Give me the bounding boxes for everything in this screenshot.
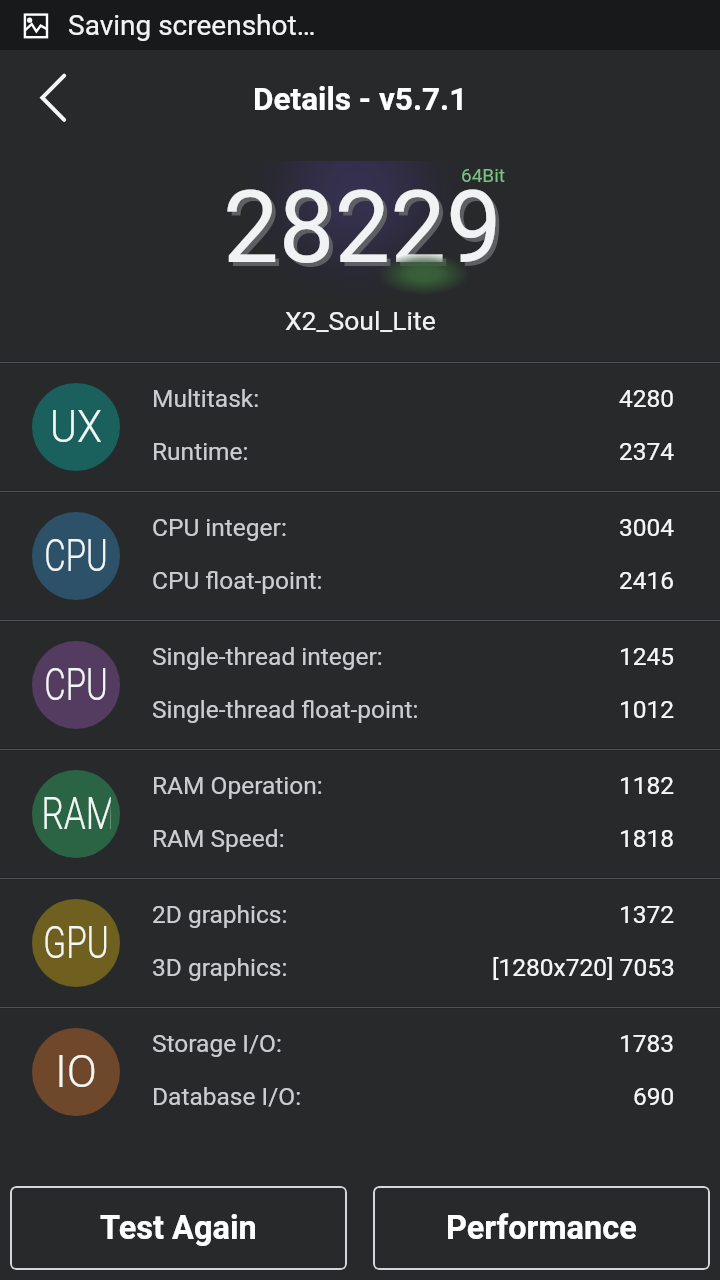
staticText: RAM (41, 788, 111, 840)
staticText: Details - v5.7.1 (253, 81, 468, 118)
staticText: Single-thread float-point: (152, 695, 419, 724)
staticText: RAM Operation: (152, 771, 323, 800)
staticText: Saving screenshot… (68, 9, 316, 42)
button[interactable]: GPU (0, 878, 720, 1007)
staticText: CPU (43, 530, 108, 582)
staticText: 64Bit (461, 164, 506, 186)
staticText: 28229 (227, 174, 506, 290)
staticText: IO (32, 1046, 120, 1098)
staticText: 1245 (619, 642, 675, 671)
staticText: 3D graphics: (152, 953, 288, 982)
staticText: 3004 (619, 513, 675, 542)
button[interactable]: RAM (0, 749, 720, 878)
staticText: 28229 (223, 170, 502, 286)
button[interactable]: IO (0, 1007, 720, 1136)
staticText: 2416 (619, 566, 675, 595)
staticText: Performance (446, 1209, 637, 1247)
staticText: 2D graphics: (152, 900, 288, 929)
staticText: CPU integer: (152, 513, 287, 542)
staticText: Multitask: (152, 384, 260, 413)
button[interactable]: Performance (373, 1186, 710, 1270)
button[interactable]: CPU (0, 491, 720, 620)
staticText: Runtime: (152, 437, 249, 466)
staticText: Single-thread integer: (152, 642, 383, 671)
button[interactable]: CPU (0, 620, 720, 749)
staticText: RAM Speed: (152, 824, 285, 853)
staticText: 1372 (619, 900, 675, 929)
staticText: 1783 (619, 1029, 675, 1058)
staticText: 690 (633, 1082, 675, 1111)
staticText: 4280 (619, 384, 675, 413)
staticText: Test Again (100, 1209, 257, 1247)
staticText: Storage I/O: (152, 1029, 282, 1058)
button[interactable]: Back (14, 50, 92, 128)
staticText: 1182 (619, 771, 675, 800)
staticText: Database I/O: (152, 1082, 302, 1111)
staticText: UX (35, 401, 116, 453)
staticText: 1012 (619, 695, 675, 724)
staticText: X2_Soul_Lite (285, 305, 436, 336)
button[interactable]: UX (0, 362, 720, 491)
staticText: CPU float-point: (152, 566, 323, 595)
staticText: CPU (43, 659, 108, 711)
staticText: 2374 (619, 437, 675, 466)
staticText: GPU (43, 917, 109, 969)
staticText: [1280x720] 7053 (492, 953, 675, 982)
button[interactable]: Test Again (10, 1186, 347, 1270)
staticText: 1818 (619, 824, 675, 853)
